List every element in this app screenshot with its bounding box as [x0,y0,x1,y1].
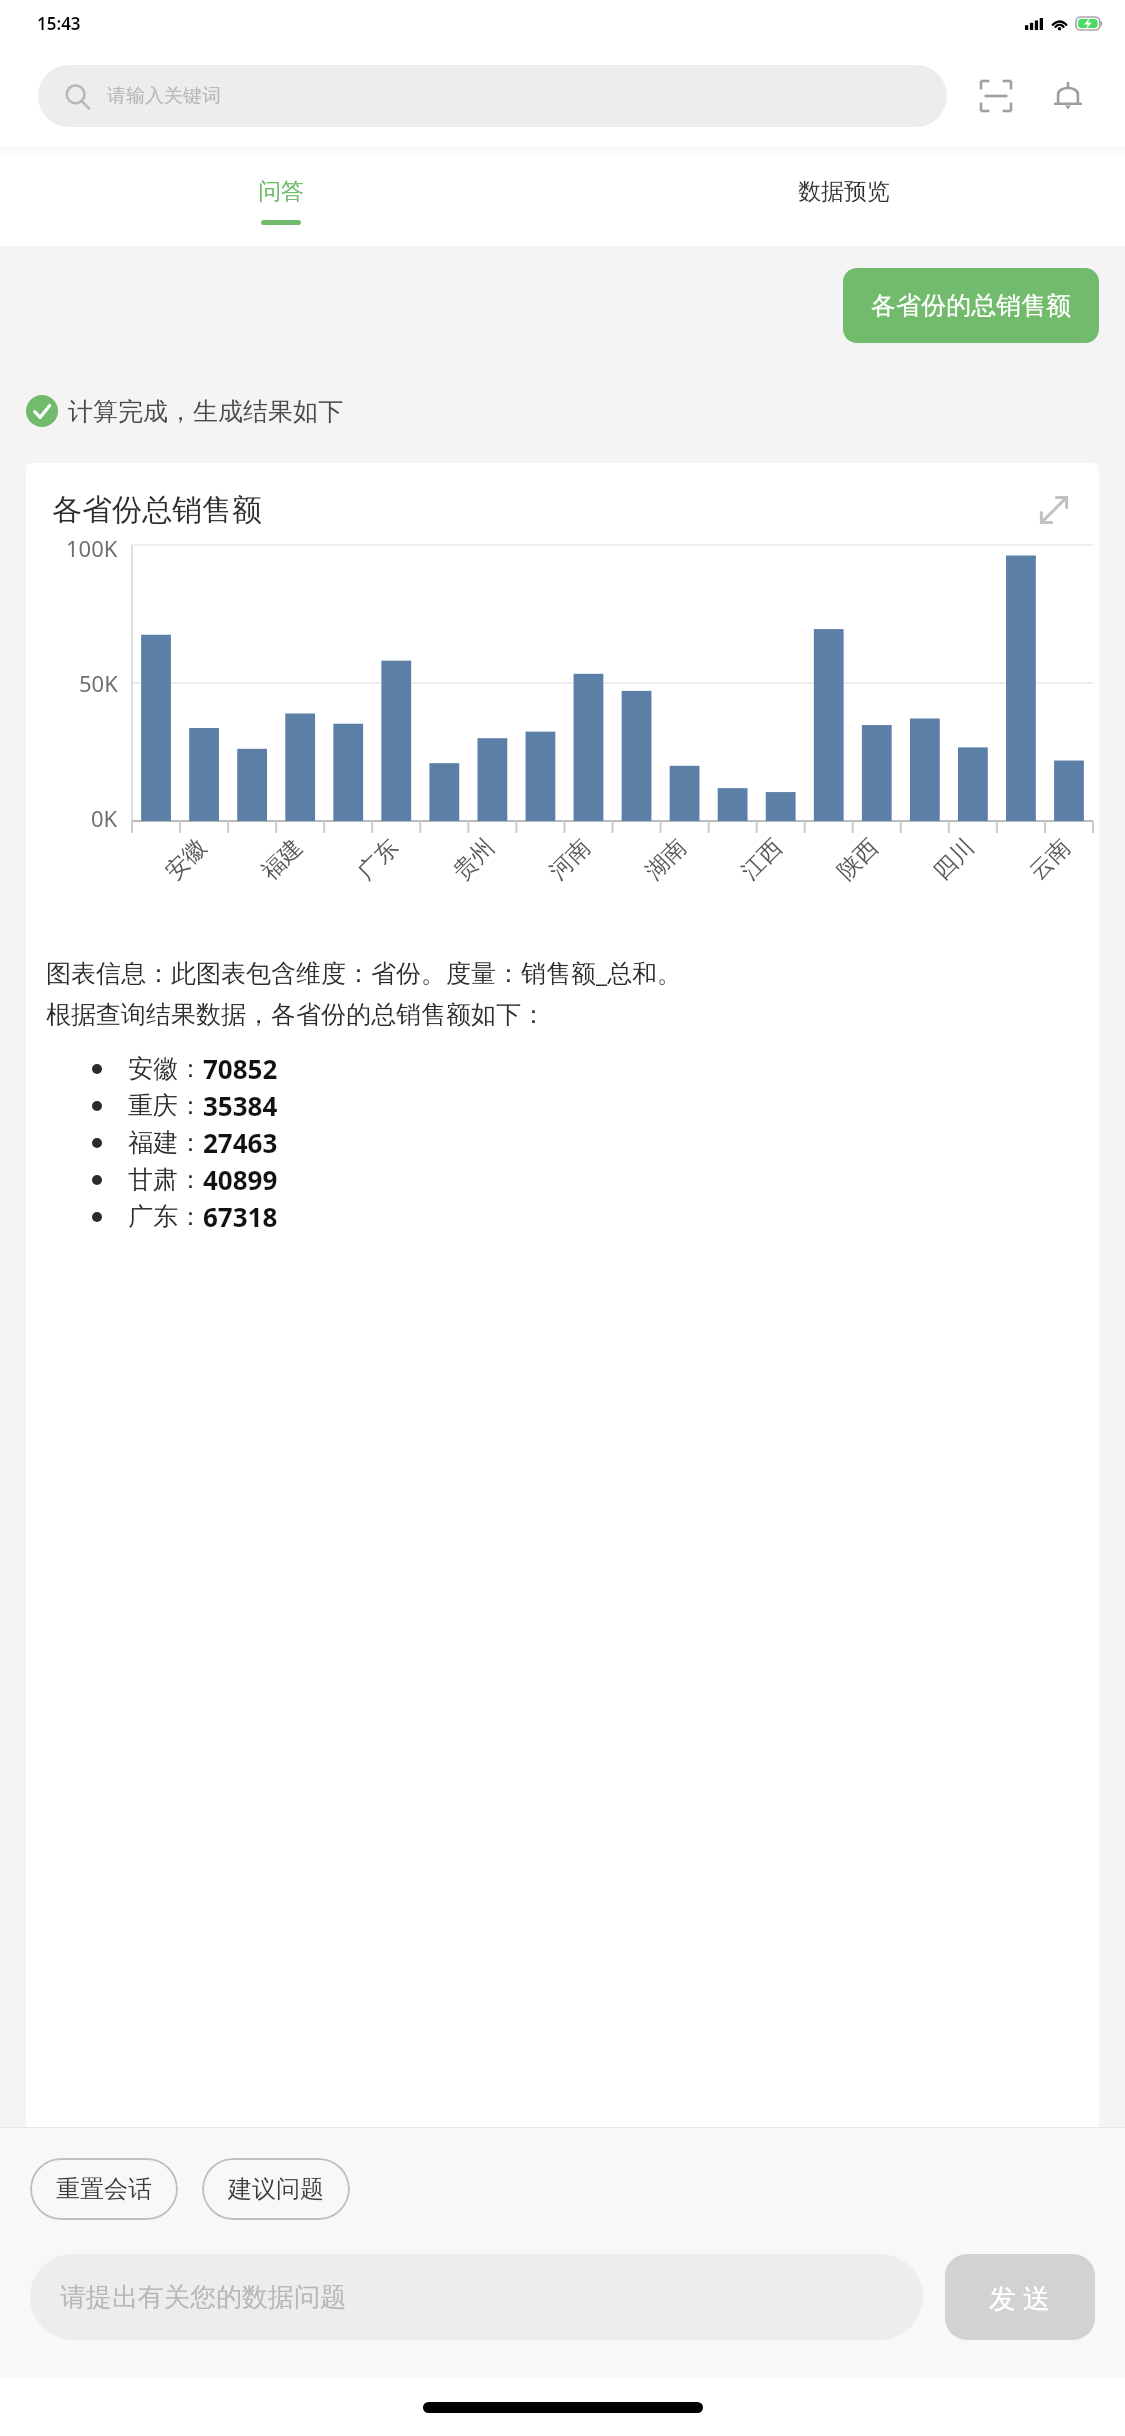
staticText: 0K [91,803,118,833]
button[interactable]: 全屏展开 [1031,487,1077,533]
button[interactable]: 通知 [1041,69,1095,123]
staticText: 67318 [203,1199,278,1234]
button[interactable]: 各省份的总销售额 [843,268,1099,343]
staticText: ： [178,1201,203,1232]
staticText: 广东 [128,1201,178,1232]
staticText: 请输入关键词 [107,84,221,108]
staticText: 40899 [203,1162,278,1197]
staticText: 云南 [1023,833,1076,886]
staticText: ： [178,1164,203,1195]
staticText: 建议问题 [228,2174,324,2204]
staticText: 重置会话 [56,2174,152,2204]
staticText: 安徽 [128,1053,178,1084]
staticText: 湖南 [639,833,692,886]
button[interactable]: 请输入关键词 [38,65,947,127]
staticText: 发 送 [989,2279,1051,2316]
staticText: 15:43 [37,12,81,35]
staticText: 根据查询结果数据，各省份的总销售额如下： [46,999,546,1030]
staticText: 35384 [203,1088,278,1123]
staticText: 50K [79,668,118,698]
staticText: ： [178,1127,203,1158]
staticText: 各省份总销售额 [52,491,1031,529]
staticText: 福建 [128,1127,178,1158]
staticText: 计算完成，生成结果如下 [68,396,343,427]
button[interactable]: 建议问题 [202,2158,350,2220]
button[interactable]: 请提出有关您的数据问题 [30,2254,923,2340]
button[interactable]: 扫一扫 [969,69,1023,123]
staticText: ： [178,1053,203,1084]
staticText: 甘肃 [128,1164,178,1195]
button[interactable]: 发 送 [945,2254,1095,2340]
staticText: 四川 [927,833,980,886]
staticText: 27463 [203,1125,278,1160]
staticText: 江西 [735,833,788,886]
staticText: 重庆 [128,1090,178,1121]
staticText: 图表信息：此图表包含维度：省份。度量：销售额_总和。 [46,955,683,989]
staticText: 问答 [258,177,304,206]
button[interactable]: 重置会话 [30,2158,178,2220]
staticText: 数据预览 [798,177,890,206]
staticText: 河南 [543,833,596,886]
staticText: ： [178,1090,203,1121]
staticText: 安徽 [159,833,212,886]
staticText: 70852 [203,1051,278,1086]
staticText: 100K [66,533,118,563]
staticText: 福建 [255,833,308,886]
staticText: 贵州 [447,833,500,886]
staticText: 陕西 [831,833,884,886]
staticText: 请提出有关您的数据问题 [60,2281,346,2314]
staticText: 广东 [351,833,404,886]
button[interactable]: 数据预览 [562,156,1125,246]
button[interactable]: 问答 [0,156,562,246]
staticText: 各省份的总销售额 [871,290,1071,321]
